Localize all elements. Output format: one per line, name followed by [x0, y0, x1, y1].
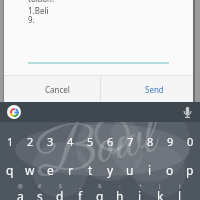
button[interactable]: 1 [0, 131, 20, 151]
button[interactable]: t [80, 160, 100, 180]
staticText: Cancel [45, 84, 70, 95]
button[interactable]: d [50, 186, 70, 200]
button[interactable] [7, 105, 21, 119]
staticText: $ [59, 183, 62, 190]
button[interactable]: 8 [140, 131, 160, 151]
staticText: e [47, 162, 54, 178]
button[interactable]: j [130, 186, 150, 200]
staticText: h [116, 188, 124, 200]
staticText: 9 [167, 134, 174, 149]
staticText: w [25, 162, 35, 178]
staticText: 1.Beli [28, 5, 49, 16]
staticText: d [56, 188, 64, 200]
staticText: a [17, 188, 24, 200]
staticText: 3 [47, 134, 54, 149]
staticText: 1 [7, 134, 14, 149]
staticText: 7 [127, 134, 134, 149]
staticText: q [6, 162, 14, 178]
button[interactable]: 4 [60, 131, 80, 151]
staticText: k [157, 188, 164, 200]
button[interactable]: q [0, 160, 20, 180]
button[interactable]: i [140, 160, 160, 180]
button[interactable] [180, 104, 195, 121]
staticText: @ [18, 183, 23, 190]
staticText: 8 [147, 134, 154, 149]
button[interactable]: 3 [40, 131, 60, 151]
staticText: y [107, 162, 114, 178]
button[interactable]: f [70, 186, 90, 200]
button[interactable]: 7 [120, 131, 140, 151]
button[interactable]: o [160, 160, 180, 180]
button[interactable]: e [40, 160, 60, 180]
button[interactable]: 9 [160, 131, 180, 151]
staticText: ( [159, 183, 161, 190]
button[interactable]: w [20, 160, 40, 180]
staticText: 0 [187, 134, 194, 149]
button[interactable]: u [120, 160, 140, 180]
button[interactable]: s [30, 186, 50, 200]
staticText: 4 [67, 134, 74, 149]
staticText: 6 [107, 134, 114, 149]
staticText: 9. [28, 14, 35, 25]
button[interactable]: 5 [80, 131, 100, 151]
button[interactable]: r [60, 160, 80, 180]
staticText: g [96, 188, 104, 200]
button[interactable]: h [110, 186, 130, 200]
staticText: s [37, 188, 43, 200]
button[interactable]: y [100, 160, 120, 180]
staticText: tolaoh. [28, 0, 55, 4]
staticText: r [68, 162, 73, 178]
staticText: _ [79, 183, 82, 190]
staticText: Bowl [28, 102, 162, 199]
staticText: 2 [27, 134, 34, 149]
staticText: i [148, 162, 152, 178]
staticText: - [119, 183, 121, 190]
button[interactable]: k [150, 186, 170, 200]
staticText: u [126, 162, 134, 178]
button[interactable]: 0 [180, 131, 200, 151]
staticText: ) [179, 183, 181, 190]
button[interactable]: l [170, 186, 190, 200]
staticText: 5 [87, 134, 94, 149]
staticText: f [78, 188, 83, 200]
staticText: & [98, 183, 102, 190]
staticText: j [138, 188, 142, 200]
button[interactable]: p [180, 160, 200, 180]
staticText: o [166, 162, 174, 178]
button[interactable]: g [90, 186, 110, 200]
staticText: Send [145, 84, 164, 95]
staticText: p [186, 162, 194, 178]
button[interactable]: a [10, 186, 30, 200]
staticText: + [139, 183, 142, 190]
button[interactable]: 2 [20, 131, 40, 151]
staticText: # [38, 183, 42, 190]
button[interactable]: Send [101, 76, 193, 102]
button[interactable]: Cancel [4, 76, 100, 102]
staticText: t [88, 162, 93, 178]
staticText: l [178, 188, 182, 200]
button[interactable]: 6 [100, 131, 120, 151]
